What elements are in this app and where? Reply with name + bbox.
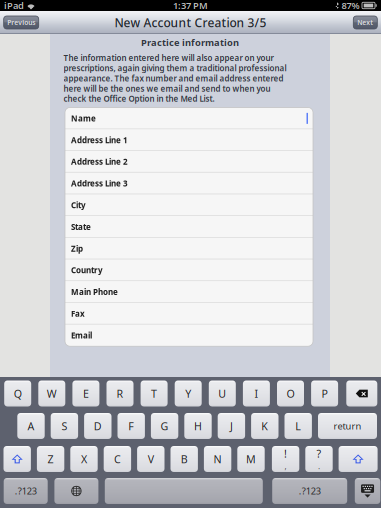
staticText: 1:37 PM: [173, 0, 208, 12]
staticText: K: [261, 419, 268, 433]
staticText: Z: [48, 452, 54, 466]
button[interactable]: Shift: [339, 446, 378, 472]
staticText: N: [214, 452, 222, 466]
button[interactable]: M: [237, 446, 265, 472]
staticText: R: [116, 386, 123, 401]
staticText: Y: [185, 386, 191, 401]
button[interactable]: Next keyboard: [54, 478, 98, 504]
staticText: Address Line 2: [71, 156, 128, 167]
button[interactable]: A: [17, 413, 45, 439]
staticText: E: [83, 386, 89, 401]
button[interactable]: return: [318, 413, 377, 439]
button[interactable]: Name: [65, 107, 313, 129]
button[interactable]: K: [251, 413, 278, 439]
button[interactable]: R: [106, 380, 133, 406]
staticText: .: [318, 461, 320, 471]
button[interactable]: H: [184, 413, 212, 439]
button[interactable]: Email: [65, 324, 313, 346]
button[interactable]: Fax: [65, 303, 313, 324]
staticText: The information entered here will also a…: [64, 52, 287, 104]
button[interactable]: .?123: [4, 478, 48, 504]
staticText: New Account Creation 3/5: [114, 14, 266, 30]
button[interactable]: !: [272, 446, 299, 472]
staticText: State: [71, 221, 91, 232]
staticText: M: [246, 452, 256, 466]
staticText: U: [218, 386, 226, 401]
button[interactable]: U: [209, 380, 236, 406]
staticText: I: [254, 386, 258, 401]
staticText: V: [148, 452, 154, 466]
button[interactable]: D: [84, 413, 111, 439]
button[interactable]: Main Phone: [65, 281, 313, 303]
staticText: 87%: [341, 0, 359, 12]
staticText: City: [71, 200, 86, 210]
staticText: Main Phone: [71, 287, 118, 297]
button[interactable]: B: [170, 446, 198, 472]
button[interactable]: V: [137, 446, 164, 472]
button[interactable]: Zip: [65, 238, 313, 259]
staticText: Country: [71, 265, 103, 275]
button[interactable]: W: [38, 380, 65, 406]
staticText: .?123: [299, 485, 321, 497]
staticText: T: [151, 386, 157, 401]
staticText: Fax: [71, 308, 85, 319]
staticText: J: [230, 419, 233, 433]
button[interactable]: Q: [4, 380, 31, 406]
staticText: L: [295, 419, 301, 433]
button[interactable]: ?: [305, 446, 333, 472]
button[interactable]: X: [70, 446, 98, 472]
button[interactable]: I: [243, 380, 270, 406]
button[interactable]: Previous: [4, 16, 39, 29]
staticText: Name: [71, 113, 96, 124]
staticText: G: [161, 419, 169, 433]
button[interactable]: Country: [65, 259, 313, 281]
staticText: Email: [71, 330, 92, 341]
staticText: Zip: [71, 243, 83, 254]
button[interactable]: E: [72, 380, 99, 406]
button[interactable]: Address Line 3: [65, 173, 313, 194]
button[interactable]: Y: [175, 380, 202, 406]
button[interactable]: T: [141, 380, 168, 406]
button[interactable]: S: [51, 413, 78, 439]
button[interactable]: Hide keyboard: [355, 478, 380, 504]
button[interactable]: O: [277, 380, 304, 406]
staticText: P: [322, 386, 328, 401]
staticText: F: [128, 419, 134, 433]
staticText: W: [47, 386, 57, 401]
button[interactable]: Z: [37, 446, 64, 472]
staticText: O: [286, 386, 294, 401]
staticText: Address Line 1: [71, 135, 128, 145]
button[interactable]: L: [284, 413, 312, 439]
button[interactable]: C: [104, 446, 131, 472]
staticText: iPad: [4, 0, 24, 12]
button[interactable]: Delete: [346, 380, 377, 406]
staticText: return: [333, 420, 361, 432]
staticText: Previous: [7, 18, 35, 27]
staticText: !: [284, 447, 287, 461]
button[interactable]: Address Line 1: [65, 129, 313, 151]
staticText: Q: [14, 386, 22, 401]
button[interactable]: N: [204, 446, 231, 472]
button[interactable]: G: [151, 413, 178, 439]
button[interactable]: State: [65, 216, 313, 238]
button[interactable]: J: [218, 413, 245, 439]
staticText: X: [81, 452, 87, 466]
button[interactable]: [105, 478, 263, 504]
staticText: B: [181, 452, 188, 466]
staticText: A: [27, 419, 34, 433]
button[interactable]: City: [65, 194, 313, 216]
staticText: Next: [357, 18, 373, 27]
button[interactable]: F: [117, 413, 145, 439]
button[interactable]: .?123: [272, 478, 347, 504]
staticText: D: [94, 419, 102, 433]
button[interactable]: Next: [353, 16, 377, 29]
staticText: Practice information: [141, 36, 239, 49]
staticText: Address Line 3: [71, 178, 128, 189]
button[interactable]: P: [311, 380, 338, 406]
button[interactable]: Address Line 2: [65, 151, 313, 173]
staticText: ?: [316, 447, 321, 461]
staticText: C: [114, 452, 121, 466]
button[interactable]: Shift: [3, 446, 31, 472]
staticText: .?123: [15, 485, 37, 497]
staticText: H: [194, 419, 202, 433]
